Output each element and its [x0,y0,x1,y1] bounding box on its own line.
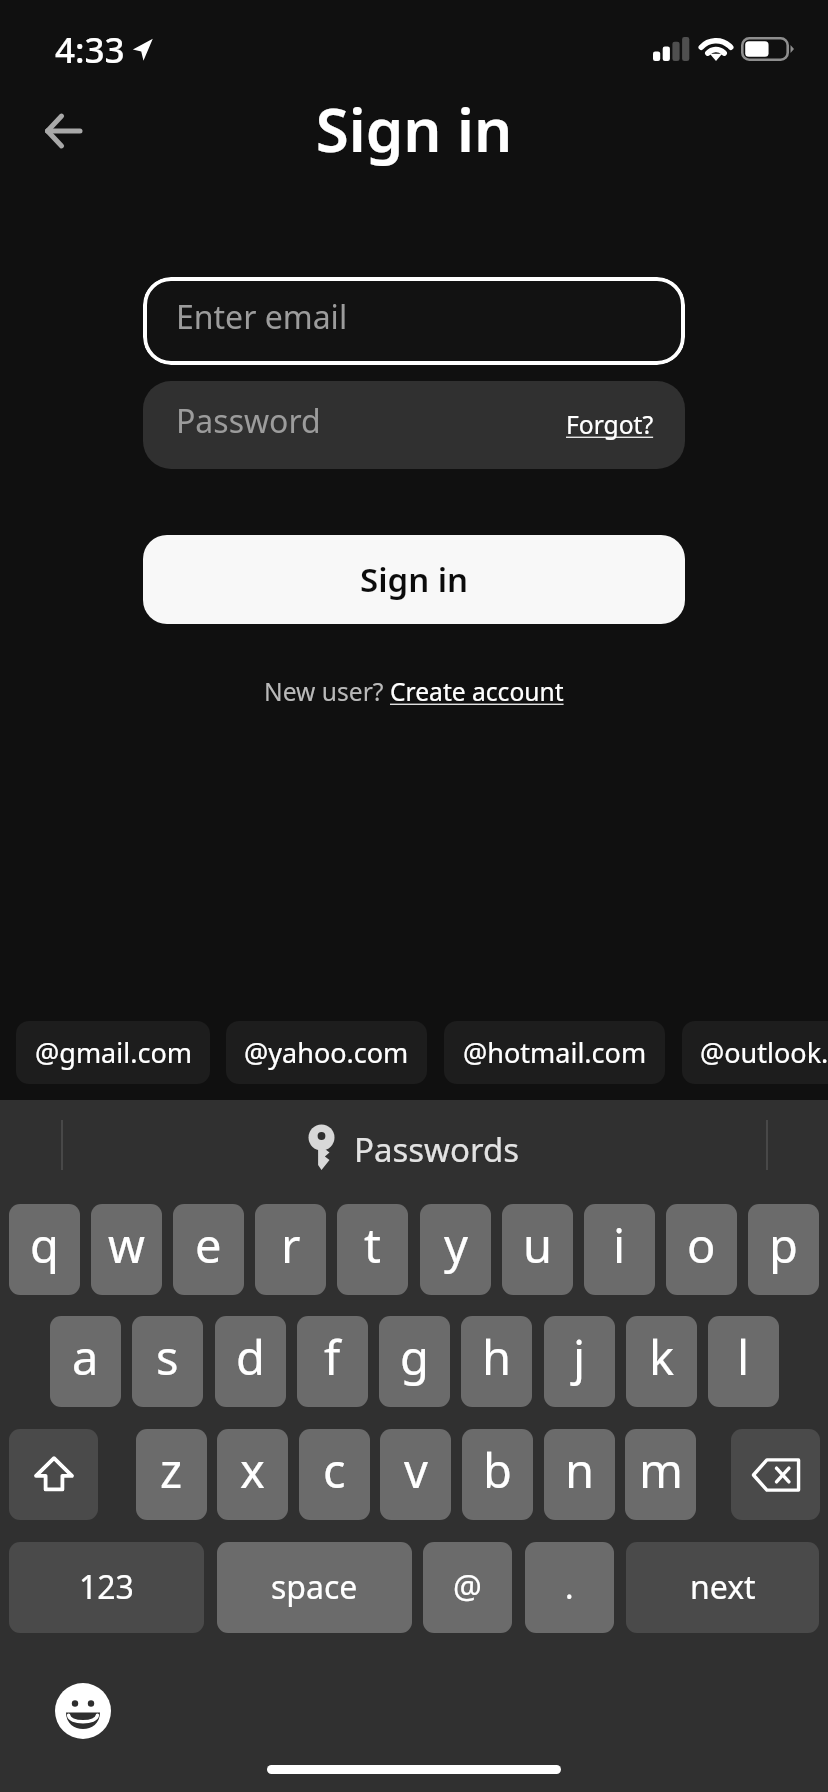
staticText: j [573,1325,586,1389]
button[interactable]: Sign in [143,535,685,624]
staticText: z [160,1438,183,1502]
staticText: g [400,1325,429,1389]
staticText: Passwords [354,1127,520,1172]
button[interactable]: j [544,1316,615,1407]
staticText: 123 [79,1565,134,1609]
button[interactable]: a [50,1316,121,1407]
button[interactable]: e [173,1204,244,1295]
staticText: d [236,1325,265,1389]
staticText: x [240,1438,265,1502]
button[interactable]: @outlook.com [682,1021,828,1084]
staticText: Password [176,399,321,443]
staticText: s [156,1325,179,1389]
staticText: @hotmail.com [463,1034,647,1071]
button[interactable]: l [708,1316,779,1407]
button[interactable]: Emoji keyboard [55,1683,111,1739]
staticText: h [482,1325,512,1389]
staticText: c [323,1438,346,1502]
staticText: r [281,1213,301,1277]
staticText: @yahoo.com [244,1034,409,1071]
button[interactable]: k [626,1316,697,1407]
staticText: Create account [390,675,564,709]
button[interactable]: r [255,1204,326,1295]
button[interactable]: Create account [390,675,564,709]
button[interactable]: z [136,1429,207,1520]
button[interactable]: Back [30,98,96,164]
button[interactable]: space [217,1542,412,1633]
button[interactable]: g [379,1316,450,1407]
staticText: @outlook.com [700,1034,828,1071]
staticText: y [444,1213,468,1277]
button[interactable]: t [337,1204,408,1295]
staticText: m [639,1438,683,1502]
staticText: New user? [264,675,390,709]
button[interactable]: q [9,1204,80,1295]
button[interactable]: h [461,1316,532,1407]
button[interactable]: n [544,1429,615,1520]
button[interactable]: p [748,1204,819,1295]
staticText: n [565,1438,595,1502]
staticText: w [108,1213,145,1277]
button[interactable]: v [380,1429,451,1520]
staticText: @ [453,1565,482,1609]
button[interactable]: next [626,1542,819,1633]
staticText: Enter email [176,295,348,339]
staticText: next [690,1565,756,1609]
button[interactable]: . [525,1542,614,1633]
button[interactable]: w [91,1204,162,1295]
button[interactable]: b [462,1429,533,1520]
button[interactable]: c [299,1429,370,1520]
button[interactable]: @gmail.com [16,1021,210,1084]
button[interactable]: o [666,1204,737,1295]
button[interactable]: @hotmail.com [444,1021,665,1084]
button[interactable]: y [420,1204,491,1295]
staticText: Forgot? [566,408,654,442]
staticText: Sign in [360,557,469,602]
staticText: p [769,1213,798,1277]
button[interactable]: f [297,1316,368,1407]
button[interactable]: Forgot? [562,404,658,446]
button[interactable]: m [625,1429,696,1520]
staticText: k [649,1325,675,1389]
staticText: q [30,1213,59,1277]
staticText: b [483,1438,512,1502]
staticText: . [565,1565,574,1609]
staticText: a [72,1325,99,1389]
button[interactable]: Password [143,381,685,469]
button[interactable]: @ [423,1542,512,1633]
staticText: u [523,1213,553,1277]
staticText: o [687,1213,716,1277]
button[interactable]: @yahoo.com [226,1021,427,1084]
button[interactable]: x [217,1429,288,1520]
button[interactable]: Shift [9,1429,98,1520]
staticText: i [613,1213,626,1277]
staticText: l [737,1325,750,1389]
staticText: Sign in [0,88,828,170]
staticText: f [324,1325,341,1389]
button[interactable]: i [584,1204,655,1295]
staticText: t [364,1213,381,1277]
button[interactable]: Enter email [143,277,685,365]
staticText: space [271,1565,358,1609]
button[interactable]: s [132,1316,203,1407]
button[interactable]: u [502,1204,573,1295]
staticText: @gmail.com [35,1034,192,1071]
staticText: v [404,1438,428,1502]
staticText: 4:33 [55,26,125,74]
button[interactable]: Backspace [731,1429,820,1520]
button[interactable]: 123 [9,1542,204,1633]
staticText: e [195,1213,222,1277]
button[interactable]: d [215,1316,286,1407]
